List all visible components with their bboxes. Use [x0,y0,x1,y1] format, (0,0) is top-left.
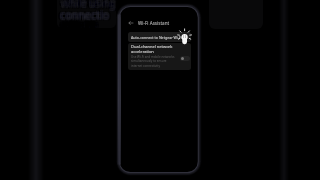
button[interactable]: Back [119,18,198,28]
staticText: connectio [59,7,109,21]
staticText: mobile data [63,19,100,28]
staticText: while using [63,0,118,11]
staticText: connectio [61,7,111,21]
staticText: mobile data [59,18,96,27]
staticText: connectio [61,10,111,24]
staticText: while using [60,0,115,8]
staticText: while using [62,0,117,10]
staticText: connectio [61,10,111,24]
staticText: connectio [58,7,108,21]
staticText: while using [62,0,117,12]
staticText: connectio [60,7,110,21]
staticText: connectio [61,9,111,23]
staticText: connectio [62,8,112,22]
button[interactable]: Dual-channel network [128,43,191,70]
staticText: while using [60,0,115,11]
staticText: connectio [61,8,111,22]
staticText: while using [62,0,117,9]
staticText: connectio [59,7,109,21]
staticText: connectio [62,7,112,21]
button[interactable]: Auto-connect to Netgear Wi-Fi 5G [128,32,191,42]
staticText: mobile data [60,18,97,27]
staticText: while using [61,0,116,9]
staticText: Dual-channel network [131,44,173,49]
staticText: connectio [59,9,109,23]
staticText: while using [61,0,116,12]
staticText: mobile data [60,18,97,27]
staticText: Auto-connect to Netgear Wi-Fi 5G [131,35,188,40]
staticText: mobile data [61,18,98,27]
staticText: mobile data [63,18,100,27]
staticText: while using [61,0,116,8]
staticText: simultaneously to ensure [131,59,167,63]
staticText: connectio [59,7,109,21]
staticText: connectio [61,9,111,23]
staticText: connectio [61,7,111,21]
staticText: while using [62,0,117,8]
staticText: connectio [60,9,110,23]
staticText: mobile data [60,19,97,28]
staticText: mobile data [62,19,99,28]
staticText: while using [60,0,115,11]
staticText: mobile data [63,19,100,28]
staticText: connectio [61,9,111,23]
staticText: connectio [61,9,111,23]
staticText: while using [62,0,117,10]
staticText: mobile data [60,19,97,28]
staticText: while using [62,0,117,12]
staticText: while using [63,0,118,8]
staticText: while using [60,0,115,10]
staticText: connectio [59,8,109,22]
staticText: while using [63,0,118,10]
button[interactable] [180,56,190,61]
staticText: while using [60,0,115,9]
staticText: while using [60,0,115,11]
staticText: connectio [59,6,109,20]
staticText: mobile data [62,18,99,27]
staticText: while using [61,0,116,9]
staticText: while using [59,0,114,9]
staticText: while using [59,0,114,11]
staticText: while using [62,0,117,8]
other: Back [128,20,134,26]
staticText: connectio [61,7,111,21]
staticText: while using [61,0,116,10]
staticText: mobile data [62,19,99,28]
staticText: mobile data [62,19,99,28]
staticText: connectio [60,6,110,20]
staticText: connectio [60,7,110,21]
staticText: acceleration [131,49,154,54]
staticText: connectio [60,9,110,23]
staticText: while using [63,0,118,11]
staticText: connectio [62,7,112,21]
staticText: connectio [59,10,109,24]
staticText: connectio [58,10,108,24]
staticText: connectio [59,7,109,21]
staticText: while using [63,0,118,12]
staticText: mobile data [61,19,98,28]
staticText: connectio [62,9,112,23]
staticText: connectio [58,8,108,22]
staticText: mobile data [60,19,97,28]
staticText: mobile data [62,18,99,27]
